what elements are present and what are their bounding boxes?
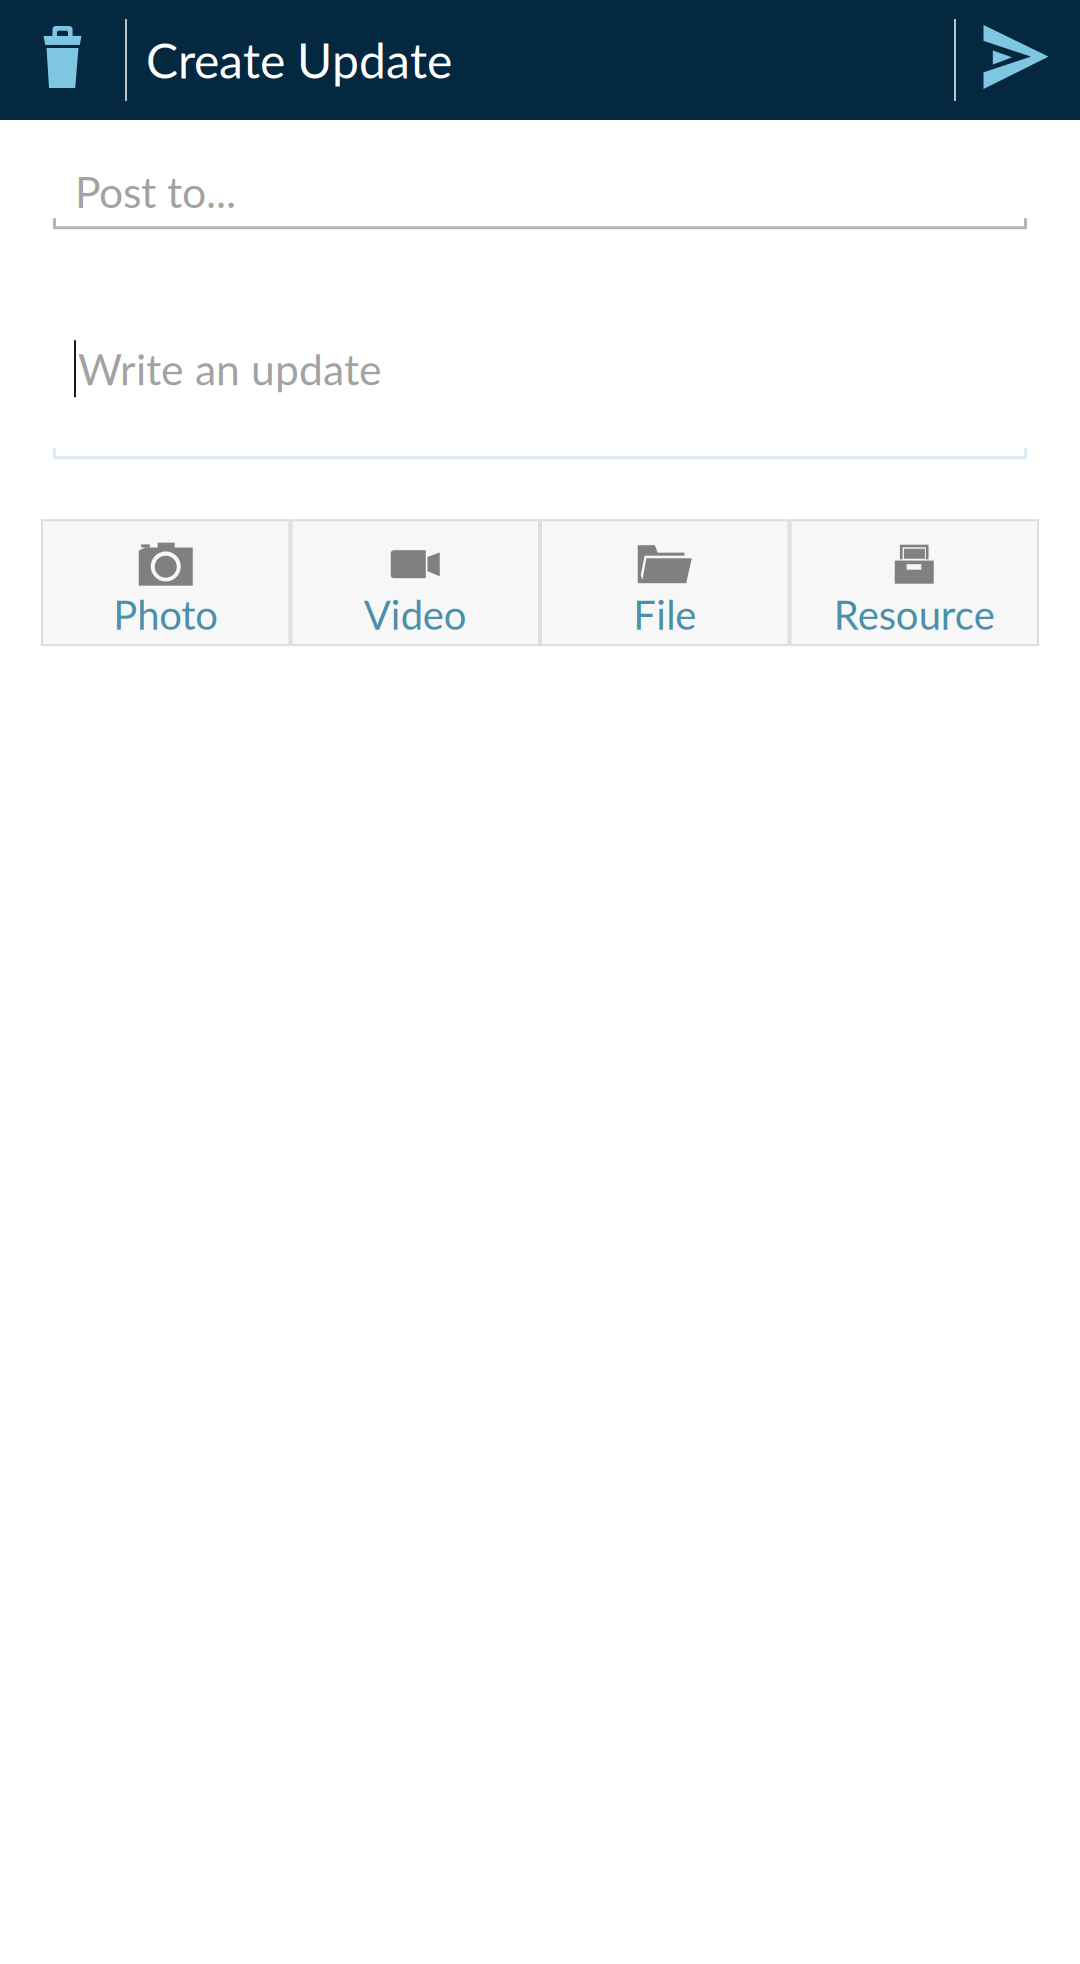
button[interactable]: Video: [291, 520, 539, 645]
button[interactable]: Write an update: [0, 340, 1080, 459]
staticText: Post to...: [75, 166, 236, 217]
staticText: Write an update: [78, 343, 382, 394]
staticText: Video: [364, 590, 467, 638]
staticText: Create Update: [146, 31, 452, 89]
button[interactable]: Resource: [790, 520, 1038, 645]
button[interactable]: Post to...: [0, 120, 1080, 229]
button[interactable]: Delete: [0, 0, 125, 120]
button[interactable]: Send: [956, 0, 1080, 120]
button[interactable]: Photo: [42, 520, 289, 645]
button[interactable]: File: [541, 520, 788, 645]
staticText: File: [633, 590, 696, 638]
staticText: Photo: [113, 590, 218, 638]
staticText: Resource: [834, 590, 995, 638]
